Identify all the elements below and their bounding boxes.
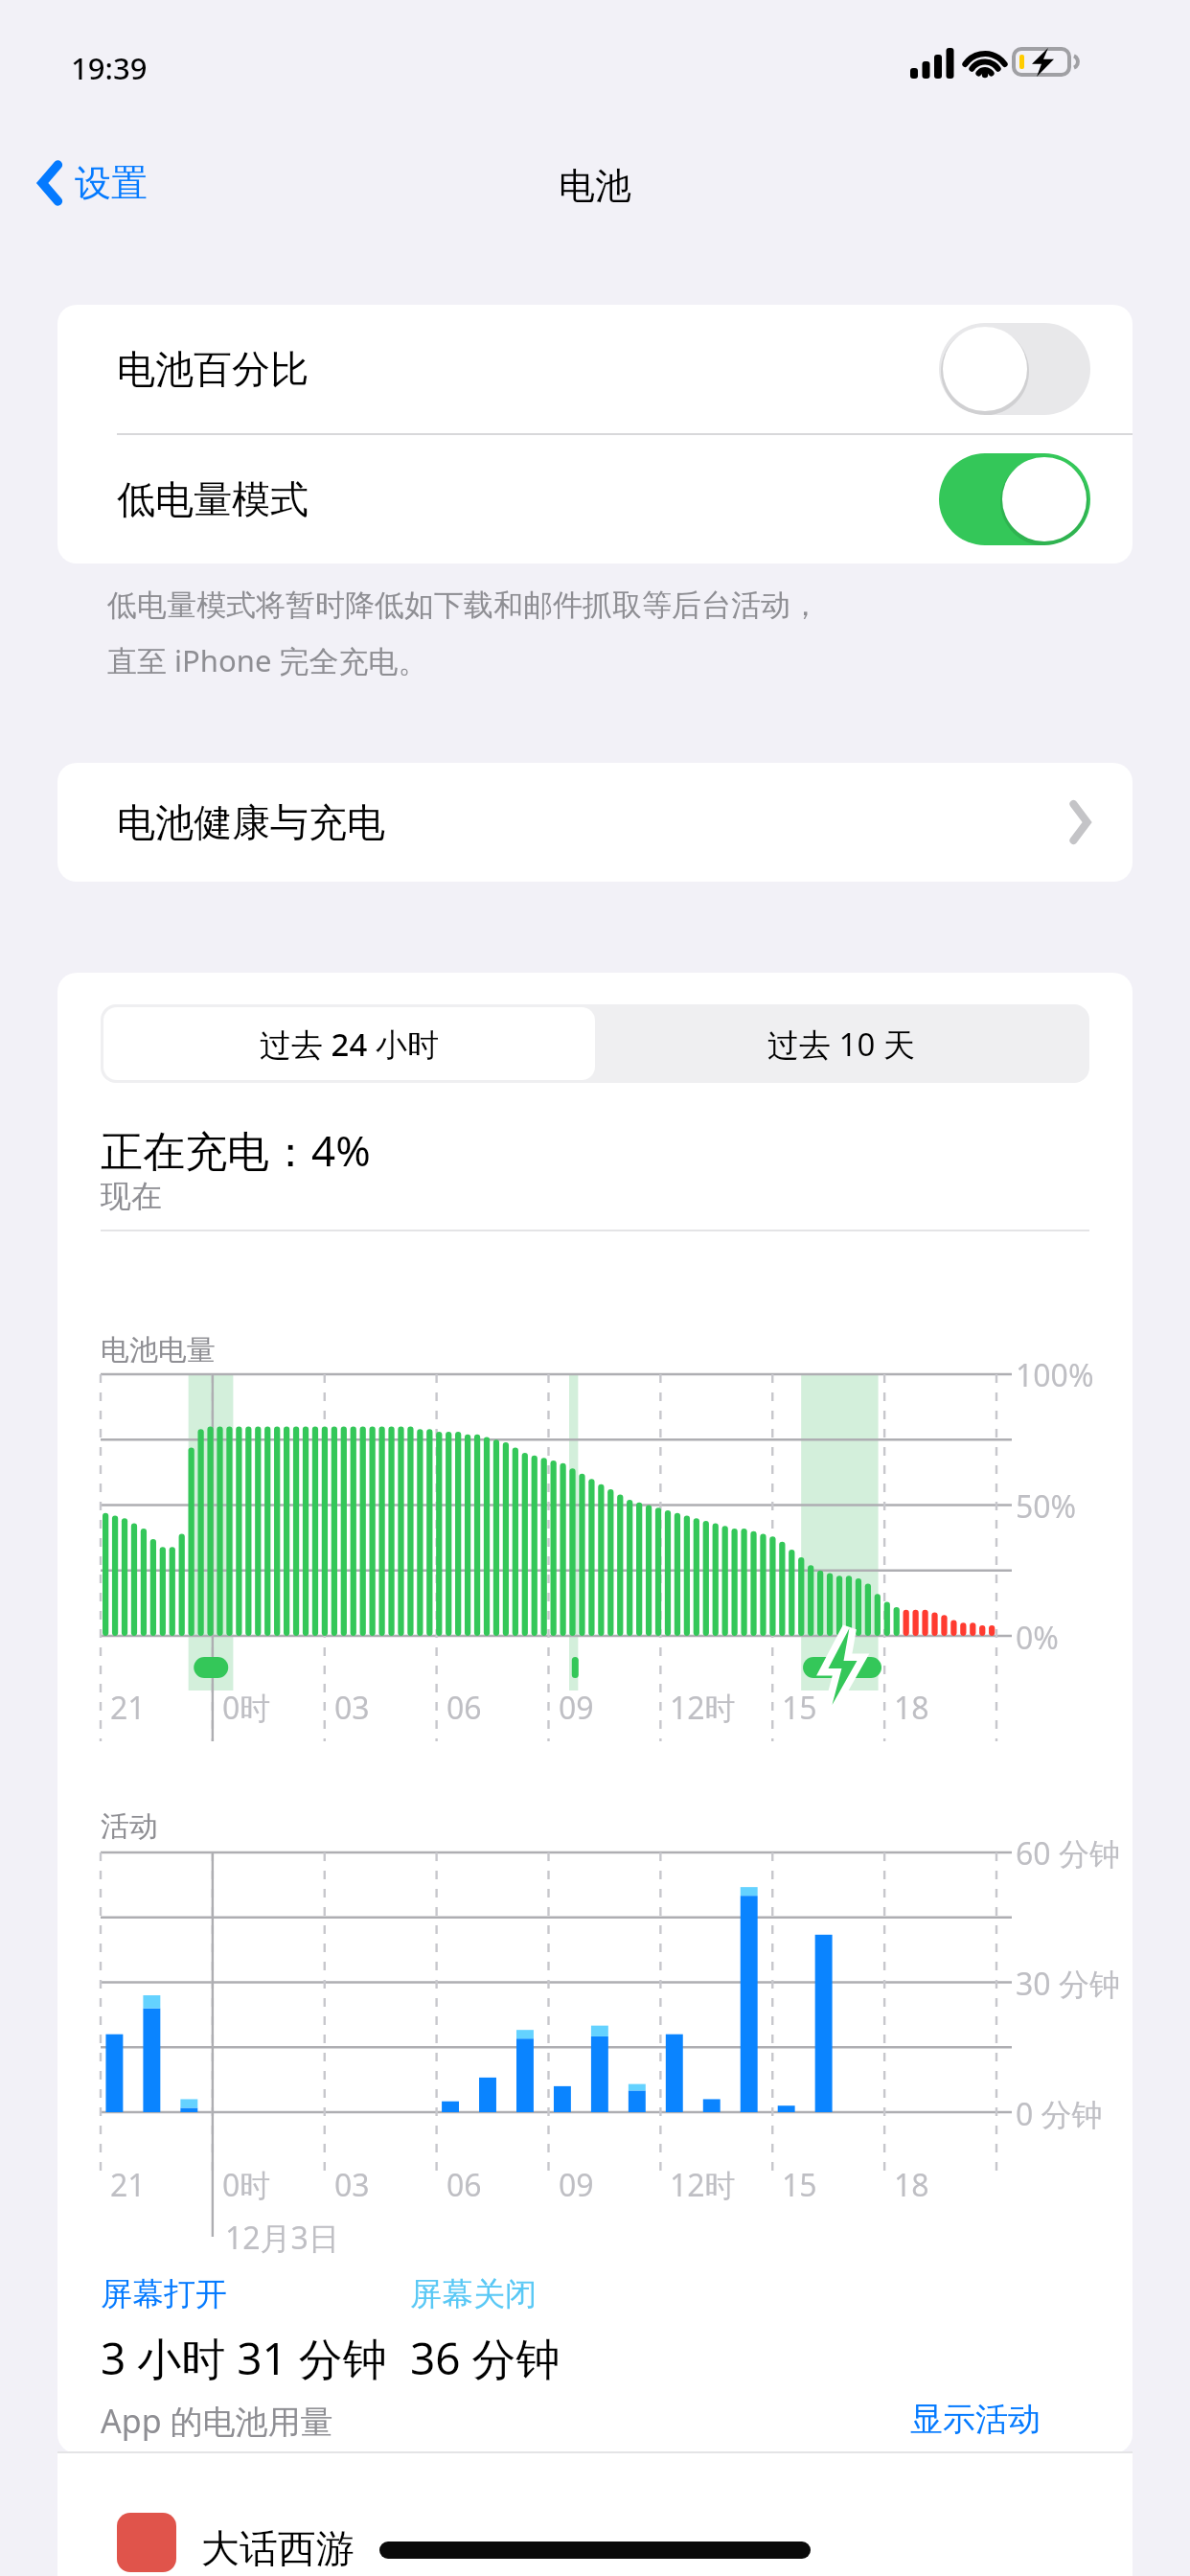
staticText: 屏幕打开: [101, 2274, 227, 2314]
staticText: 12时: [670, 2164, 736, 2206]
staticText: 正在充电：4%: [101, 1121, 371, 1179]
staticText: 0 分钟: [1016, 2093, 1103, 2135]
staticText: 设置: [75, 160, 148, 206]
staticText: 21: [110, 2164, 146, 2206]
staticText: 0时: [222, 1687, 271, 1729]
staticText: 过去 24 小时: [260, 1023, 439, 1066]
button[interactable]: Back: [27, 149, 157, 217]
staticText: 06: [446, 2164, 482, 2206]
staticText: 09: [559, 1687, 594, 1729]
staticText: 15: [782, 2164, 817, 2206]
button[interactable]: 过去 10 天: [595, 1007, 1087, 1080]
staticText: 0%: [1016, 1617, 1059, 1659]
staticText: 18: [894, 2164, 929, 2206]
staticText: 现在: [101, 1177, 162, 1215]
staticText: 电池: [559, 163, 631, 209]
staticText: 低电量模式将暂时降低如下载和邮件抓取等后台活动，: [107, 586, 820, 624]
button[interactable]: 电池健康与充电: [57, 763, 1133, 882]
staticText: 低电量模式: [117, 475, 309, 523]
staticText: 50%: [1016, 1485, 1077, 1528]
staticText: 100%: [1016, 1354, 1094, 1396]
staticText: 03: [334, 2164, 370, 2206]
staticText: 03: [334, 1687, 370, 1729]
staticText: 60 分钟: [1016, 1832, 1120, 1874]
staticText: 19:39: [71, 48, 148, 88]
button[interactable]: 低电量模式: [939, 453, 1090, 545]
staticText: 大话西游: [201, 2524, 355, 2572]
staticText: 18: [894, 1687, 929, 1729]
staticText: 36 分钟: [410, 2328, 561, 2388]
staticText: 电池百分比: [117, 345, 309, 393]
button[interactable]: 电池百分比: [57, 305, 1133, 433]
staticText: 0时: [222, 2164, 271, 2206]
staticText: 电池电量: [101, 1332, 216, 1368]
staticText: 15: [782, 1687, 817, 1729]
button[interactable]: 显示活动: [903, 2391, 1048, 2448]
staticText: 30 分钟: [1016, 1963, 1120, 2005]
staticText: 活动: [101, 1808, 158, 1845]
staticText: 21: [110, 1687, 146, 1729]
staticText: 09: [559, 2164, 594, 2206]
staticText: App 的电池用量: [101, 2399, 333, 2443]
button[interactable]: 过去 24 小时: [103, 1007, 595, 1080]
button[interactable]: 屏幕打开: [101, 2274, 387, 2388]
staticText: 12月3日: [225, 2217, 339, 2259]
staticText: 显示活动: [910, 2399, 1041, 2440]
staticText: 屏幕关闭: [410, 2274, 537, 2314]
staticText: 3 小时 31 分钟: [101, 2328, 387, 2388]
staticText: 电池健康与充电: [117, 798, 385, 846]
staticText: 06: [446, 1687, 482, 1729]
button[interactable]: 屏幕关闭: [410, 2274, 561, 2388]
staticText: 直至 iPhone 完全充电。: [107, 640, 428, 680]
button[interactable]: 低电量模式: [57, 435, 1133, 563]
staticText: 过去 10 天: [767, 1023, 915, 1066]
button[interactable]: 电池百分比: [939, 323, 1090, 415]
staticText: 12时: [670, 1687, 736, 1729]
